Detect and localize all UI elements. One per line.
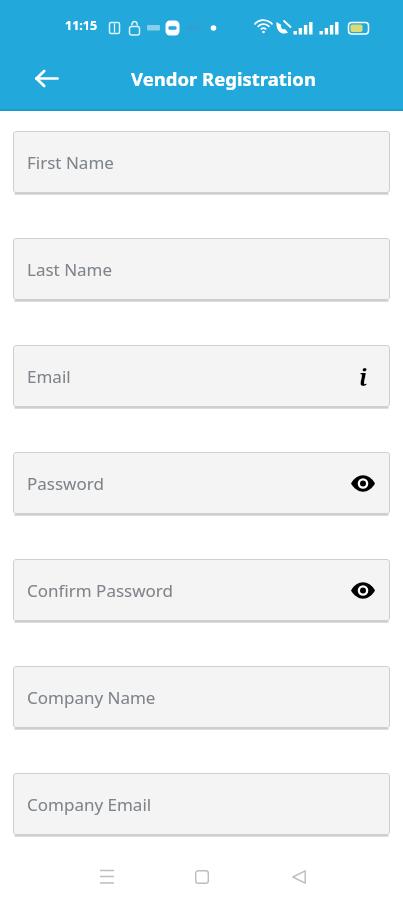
staticText: i bbox=[359, 361, 368, 392]
button[interactable]: Company Name bbox=[13, 666, 390, 728]
button[interactable]: Show password bbox=[349, 576, 377, 604]
staticText: Confirm Password bbox=[27, 579, 173, 602]
staticText: Email bbox=[27, 365, 71, 388]
button[interactable]: Email bbox=[13, 345, 390, 407]
button[interactable]: First Name bbox=[13, 131, 390, 193]
button[interactable]: Recents bbox=[92, 862, 122, 892]
button[interactable]: Show password bbox=[349, 469, 377, 497]
button[interactable]: Company Email bbox=[13, 773, 390, 835]
button[interactable]: Last Name bbox=[13, 238, 390, 300]
staticText: Company Name bbox=[27, 686, 156, 709]
staticText: Vendor Registration bbox=[131, 66, 316, 91]
staticText: 11:15 bbox=[65, 17, 98, 34]
button[interactable]: Back bbox=[24, 56, 68, 100]
button[interactable]: Home bbox=[187, 862, 217, 892]
button[interactable]: Confirm Password bbox=[13, 559, 390, 621]
staticText: Company Email bbox=[27, 793, 152, 816]
button[interactable]: Password bbox=[13, 452, 390, 514]
button[interactable]: Back bbox=[284, 862, 314, 892]
staticText: Last Name bbox=[27, 258, 113, 281]
staticText: Password bbox=[27, 472, 104, 495]
staticText: First Name bbox=[27, 151, 114, 174]
